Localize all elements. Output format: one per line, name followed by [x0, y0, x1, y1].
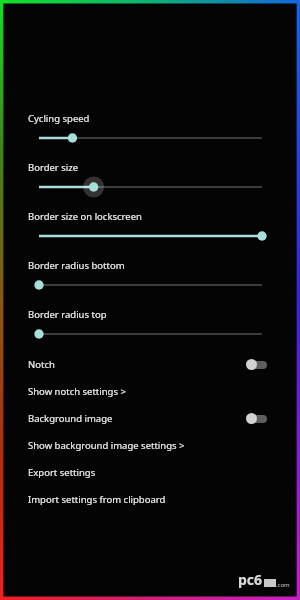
staticText: Notch — [28, 358, 55, 371]
button[interactable]: Show notch settings > — [4, 378, 296, 405]
button[interactable]: Border radius bottom — [4, 278, 296, 292]
staticText: Show notch settings > — [28, 385, 126, 398]
button[interactable]: Border radius top — [4, 308, 296, 341]
button[interactable]: Export settings — [4, 459, 296, 486]
button[interactable]: Border size on lockscreen — [4, 210, 296, 243]
staticText: Import settings from clipboard — [28, 493, 166, 506]
staticText: Cycling speed — [28, 112, 90, 125]
staticText: Border size on lockscreen — [28, 210, 142, 223]
staticText: Border radius top — [28, 308, 107, 321]
staticText: .com — [276, 581, 290, 589]
button[interactable]: Show background image settings > — [4, 432, 296, 459]
button[interactable]: Border radius top — [4, 327, 296, 341]
button[interactable]: Border radius bottom — [4, 259, 296, 292]
staticText: pc6 — [238, 570, 263, 589]
button[interactable]: Border size — [4, 161, 296, 194]
button[interactable]: Notch — [4, 351, 296, 378]
staticText: Background image — [28, 412, 113, 425]
button[interactable]: Import settings from clipboard — [4, 486, 296, 513]
button[interactable]: Background image — [4, 405, 296, 432]
button[interactable]: Cycling speed — [4, 131, 296, 145]
staticText: Show background image settings > — [28, 439, 185, 452]
staticText: Border radius bottom — [28, 259, 125, 272]
staticText: Export settings — [28, 466, 96, 479]
staticText: Border size — [28, 161, 79, 174]
button[interactable]: Border size — [4, 180, 296, 194]
button[interactable]: Border size on lockscreen — [4, 229, 296, 243]
button[interactable]: Cycling speed — [4, 112, 296, 145]
